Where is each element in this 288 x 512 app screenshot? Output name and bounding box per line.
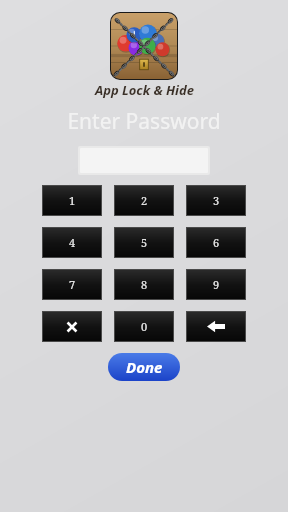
- button[interactable]: Done: [108, 353, 180, 381]
- staticText: 0: [141, 319, 148, 334]
- button[interactable]: 3: [187, 186, 245, 215]
- button[interactable]: 2: [115, 186, 173, 215]
- staticText: 4: [69, 235, 76, 250]
- staticText: 5: [141, 235, 148, 250]
- staticText: 8: [141, 277, 148, 292]
- staticText: Enter Password: [67, 107, 221, 136]
- button[interactable]: 1: [43, 186, 101, 215]
- button[interactable]: Clear: [43, 312, 101, 341]
- staticText: 9: [213, 277, 220, 292]
- staticText: App Lock & Hide: [96, 82, 195, 100]
- button[interactable]: 8: [115, 270, 173, 299]
- button[interactable]: 5: [115, 228, 173, 257]
- button[interactable]: 0: [115, 312, 173, 341]
- button[interactable]: Backspace: [187, 312, 245, 341]
- button[interactable]: 9: [187, 270, 245, 299]
- other: App Lock and Hide icon: [111, 13, 177, 79]
- staticText: 3: [213, 193, 220, 208]
- button[interactable]: 6: [187, 228, 245, 257]
- button[interactable]: 7: [43, 270, 101, 299]
- staticText: Done: [126, 357, 163, 377]
- staticText: 6: [213, 235, 220, 250]
- button[interactable]: 4: [43, 228, 101, 257]
- staticText: 7: [69, 277, 76, 292]
- staticText: 2: [141, 193, 148, 208]
- staticText: App Lock & Hide: [95, 81, 194, 99]
- staticText: 1: [69, 193, 76, 208]
